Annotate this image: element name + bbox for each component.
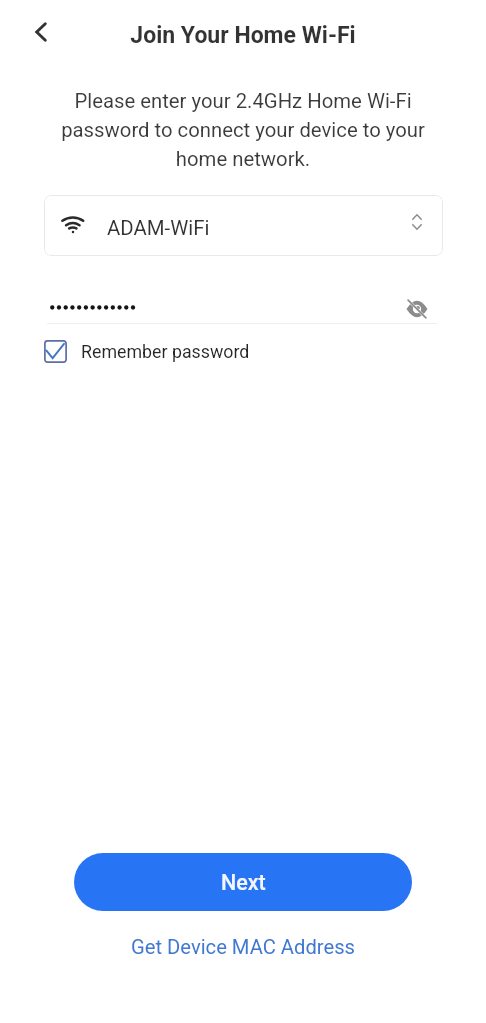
button[interactable]: Remember password <box>44 338 250 364</box>
staticText: Please enter your 2.4GHz Home Wi-Fi pass… <box>57 89 429 171</box>
staticText: ADAM-WiFi <box>107 216 210 240</box>
button[interactable]: ADAM-WiFi <box>44 195 443 256</box>
button[interactable]: Back <box>19 10 63 54</box>
staticText: Join Your Home Wi-Fi <box>0 22 486 49</box>
staticText: Next <box>221 870 266 895</box>
button[interactable]: Get Device MAC Address <box>0 932 486 962</box>
staticText: Remember password <box>81 341 250 362</box>
button[interactable]: Next <box>74 853 412 911</box>
button[interactable]: Show password <box>405 297 429 321</box>
staticText: Get Device MAC Address <box>131 935 356 959</box>
